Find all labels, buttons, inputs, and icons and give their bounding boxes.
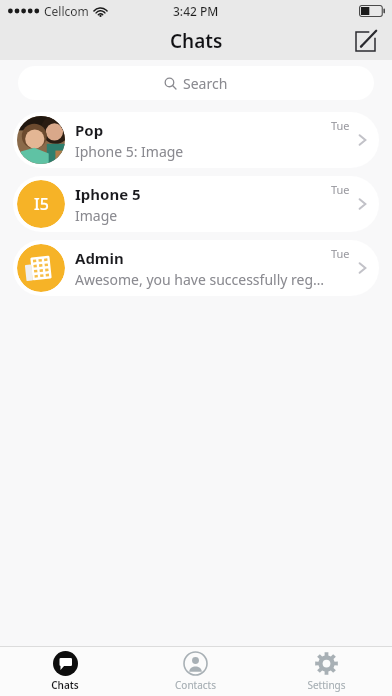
- staticText: Tue: [331, 246, 350, 261]
- staticText: Iphone 5: Image: [75, 142, 184, 161]
- staticText: 3:42 PM: [173, 3, 219, 19]
- staticText: Search: [183, 74, 228, 93]
- button[interactable]: Pop: [13, 112, 379, 168]
- staticText: Awesome, you have successfully regis…: [75, 270, 325, 289]
- staticText: Admin: [75, 248, 124, 268]
- button[interactable]: Compose new message: [350, 25, 382, 57]
- staticText: Iphone 5: [75, 184, 141, 204]
- staticText: Chats: [51, 678, 79, 692]
- staticText: Chats: [170, 28, 223, 54]
- staticText: Cellcom: [44, 3, 89, 19]
- button[interactable]: Contacts: [130, 647, 261, 696]
- staticText: Pop: [75, 120, 104, 140]
- staticText: Tue: [331, 118, 350, 133]
- staticText: Contacts: [175, 678, 216, 692]
- button[interactable]: Search: [18, 66, 374, 100]
- button[interactable]: Admin: [13, 240, 379, 296]
- staticText: Settings: [307, 678, 346, 692]
- button[interactable]: Settings: [261, 647, 392, 696]
- staticText: Image: [75, 206, 118, 225]
- button[interactable]: I5: [13, 176, 379, 232]
- staticText: I5: [34, 193, 49, 215]
- button[interactable]: Chats: [0, 647, 130, 696]
- staticText: Tue: [331, 182, 350, 197]
